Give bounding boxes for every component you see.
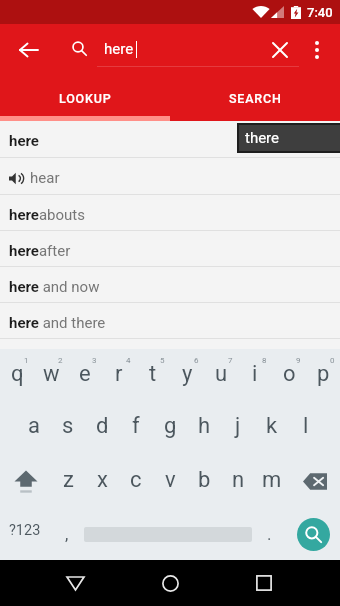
button[interactable]: 6 xyxy=(170,349,204,402)
staticText: y xyxy=(182,361,193,387)
staticText: hereafter xyxy=(9,242,71,260)
button[interactable]: 5 xyxy=(136,349,170,402)
button[interactable]: Back xyxy=(6,28,50,72)
button[interactable]: Home xyxy=(148,567,192,599)
button[interactable]: 0 xyxy=(306,349,340,402)
button[interactable]: s xyxy=(51,402,85,455)
staticText: x xyxy=(97,467,108,493)
staticText: r xyxy=(115,361,123,387)
staticText: 1 xyxy=(24,356,29,365)
staticText: w xyxy=(43,361,60,387)
button[interactable]: v xyxy=(153,455,187,508)
staticText: o xyxy=(283,361,296,387)
staticText: a xyxy=(28,413,40,439)
button[interactable]: ?123 xyxy=(0,508,50,560)
button[interactable]: More options xyxy=(301,28,333,72)
button[interactable]: LOOKUP xyxy=(0,78,170,119)
staticText: , xyxy=(65,524,69,544)
button[interactable]: . xyxy=(252,508,286,560)
button[interactable]: Back xyxy=(53,567,97,599)
button[interactable]: 2 xyxy=(34,349,68,402)
staticText: t xyxy=(149,361,157,387)
button[interactable]: c xyxy=(119,455,153,508)
staticText: k xyxy=(266,413,278,439)
staticText: l xyxy=(303,413,309,439)
staticText: SEARCH xyxy=(229,91,282,106)
button[interactable]: hereafter xyxy=(0,231,340,266)
staticText: there xyxy=(245,129,280,147)
staticText: hear xyxy=(30,169,60,187)
staticText: q xyxy=(11,361,24,387)
staticText: s xyxy=(62,413,74,439)
staticText: p xyxy=(317,361,330,387)
button[interactable]: Search xyxy=(286,508,340,560)
button[interactable]: Clear text xyxy=(258,28,302,72)
staticText: 6 xyxy=(194,356,199,365)
staticText: 8 xyxy=(262,356,267,365)
button[interactable]: SEARCH xyxy=(170,78,340,119)
button[interactable]: 9 xyxy=(272,349,306,402)
button[interactable]: f xyxy=(119,402,153,455)
staticText: i xyxy=(252,361,258,387)
staticText: 4 xyxy=(126,356,131,365)
staticText: 7:40 xyxy=(307,5,333,20)
button[interactable]: z xyxy=(51,455,85,508)
button[interactable]: 4 xyxy=(102,349,136,402)
button[interactable]: n xyxy=(221,455,255,508)
staticText: 2 xyxy=(58,356,63,365)
staticText: LOOKUP xyxy=(59,91,112,106)
staticText: n xyxy=(232,467,245,493)
staticText: 5 xyxy=(160,356,165,365)
button[interactable]: m xyxy=(255,455,289,508)
staticText: 3 xyxy=(92,356,97,365)
staticText: u xyxy=(215,361,228,387)
button[interactable]: h xyxy=(187,402,221,455)
button[interactable]: Recent apps xyxy=(242,567,286,599)
button[interactable]: Backspace xyxy=(289,455,340,508)
staticText: f xyxy=(132,413,140,439)
button[interactable]: b xyxy=(187,455,221,508)
button[interactable]: j xyxy=(221,402,255,455)
staticText: m xyxy=(262,467,282,493)
staticText: 0 xyxy=(330,356,335,365)
button[interactable]: 3 xyxy=(68,349,102,402)
button[interactable]: , xyxy=(50,508,84,560)
button[interactable]: a xyxy=(17,402,51,455)
staticText: z xyxy=(63,467,74,493)
staticText: here xyxy=(9,132,39,150)
button[interactable]: d xyxy=(85,402,119,455)
button[interactable]: 8 xyxy=(238,349,272,402)
staticText: . xyxy=(267,524,272,544)
button[interactable]: here xyxy=(0,121,340,157)
button[interactable]: x xyxy=(85,455,119,508)
staticText: d xyxy=(96,413,109,439)
staticText: c xyxy=(130,467,142,493)
staticText: hereabouts xyxy=(9,206,86,224)
staticText: ?123 xyxy=(9,522,41,539)
staticText: j xyxy=(235,413,241,439)
button[interactable]: here and now xyxy=(0,267,340,302)
staticText: here and now xyxy=(9,278,100,296)
staticText: 9 xyxy=(296,356,301,365)
button[interactable]: Space xyxy=(84,508,252,560)
staticText: g xyxy=(164,413,177,439)
staticText: here and there xyxy=(9,314,106,332)
button[interactable]: hereabouts xyxy=(0,195,340,230)
button[interactable]: hear xyxy=(0,158,340,194)
staticText: here xyxy=(104,40,134,58)
staticText: h xyxy=(198,413,211,439)
button[interactable]: Shift xyxy=(0,455,51,508)
button[interactable]: g xyxy=(153,402,187,455)
staticText: 7 xyxy=(228,356,233,365)
staticText: b xyxy=(198,467,211,493)
button[interactable]: k xyxy=(255,402,289,455)
button[interactable]: 1 xyxy=(0,349,34,402)
staticText: e xyxy=(79,361,91,387)
button[interactable]: here and there xyxy=(0,303,340,338)
button[interactable]: l xyxy=(289,402,323,455)
staticText: v xyxy=(165,467,176,493)
button[interactable]: 7 xyxy=(204,349,238,402)
